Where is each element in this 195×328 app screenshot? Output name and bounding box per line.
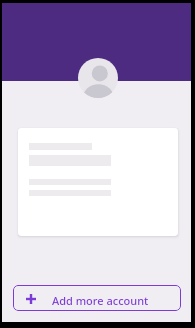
button[interactable]: Add more account (13, 285, 181, 311)
staticText: Add more account (52, 293, 149, 308)
button[interactable]: Profile picture (78, 58, 118, 98)
button[interactable] (18, 128, 178, 236)
